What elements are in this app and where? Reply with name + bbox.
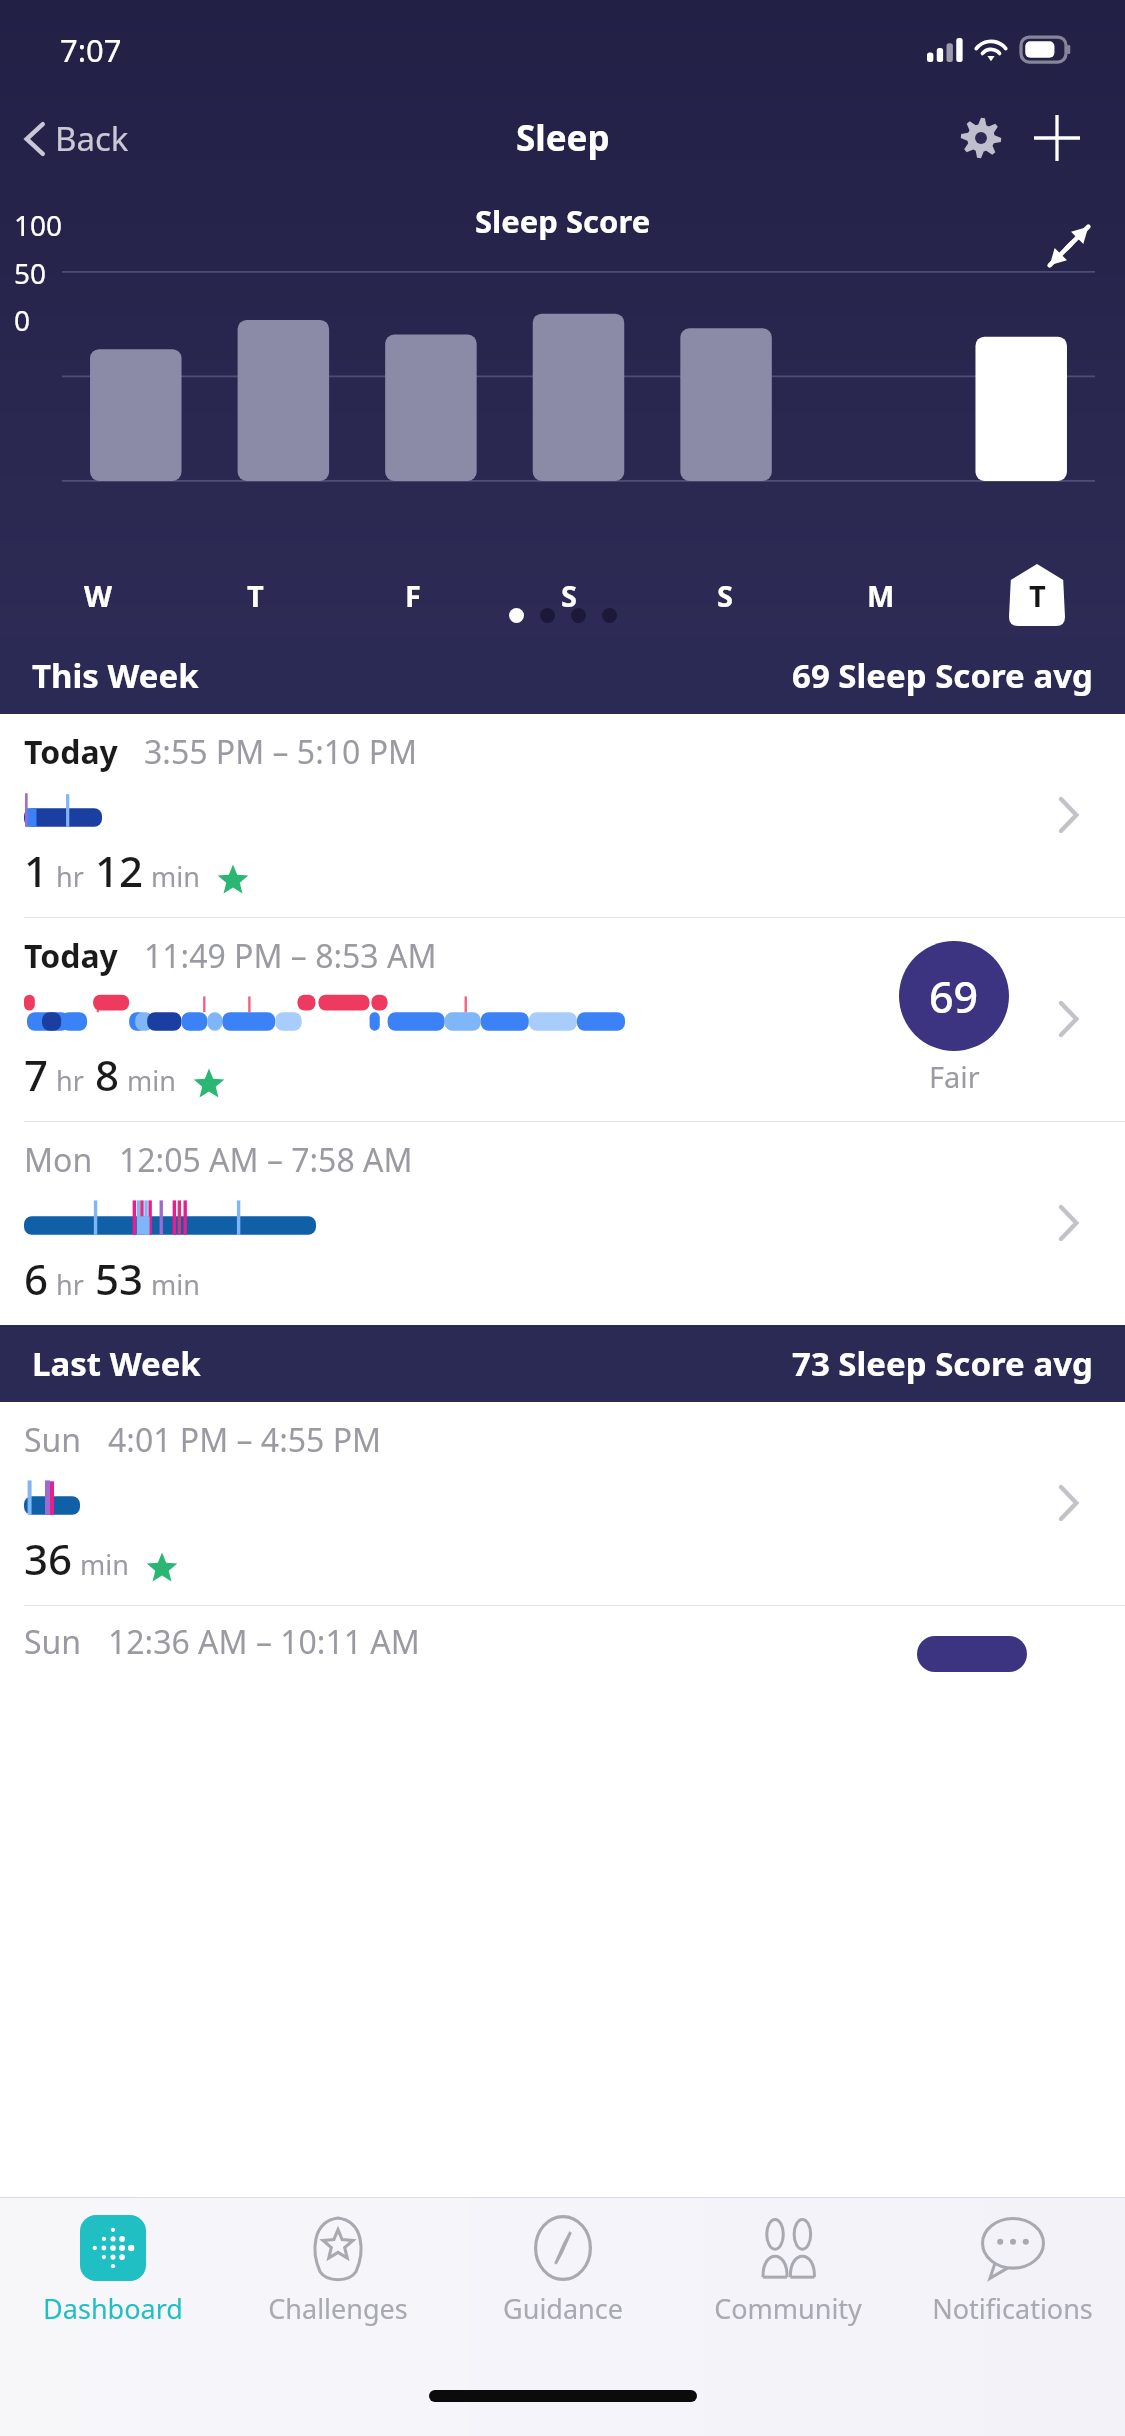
staticText: hr <box>56 1266 84 1303</box>
staticText: min <box>151 858 200 895</box>
staticText: 12:05 AM – 7:58 AM <box>119 1138 413 1182</box>
staticText: Mon <box>24 1138 93 1182</box>
staticText: 7 <box>24 1046 49 1103</box>
button[interactable]: Expand chart <box>1033 210 1105 282</box>
staticText: 50 <box>14 254 47 292</box>
staticText: T <box>247 576 264 615</box>
staticText: 36 <box>24 1530 73 1587</box>
staticText: 69 Sleep Score avg <box>792 653 1093 698</box>
staticText: This Week <box>32 653 199 698</box>
staticText: M <box>867 576 895 615</box>
button[interactable]: Sun <box>0 1402 1125 1605</box>
staticText: Notifications <box>932 2290 1093 2327</box>
button[interactable]: Dashboard <box>0 2212 225 2370</box>
staticText: Community <box>714 2290 862 2327</box>
staticText: min <box>151 1266 200 1303</box>
staticText: 6 <box>24 1250 49 1307</box>
staticText: W <box>84 576 113 615</box>
staticText: Sleep <box>516 114 610 162</box>
button[interactable]: Today <box>0 714 1125 917</box>
staticText: Dashboard <box>43 2290 183 2327</box>
staticText: hr <box>56 1062 84 1099</box>
staticText: Last Week <box>32 1341 201 1386</box>
staticText: min <box>80 1546 129 1583</box>
button[interactable]: Challenges <box>225 2212 450 2370</box>
button[interactable]: Mon <box>0 1122 1125 1325</box>
staticText: 11:49 PM – 8:53 AM <box>144 934 437 978</box>
staticText: S <box>717 576 733 615</box>
staticText: Today <box>24 934 118 978</box>
button[interactable]: Add sleep log <box>1025 106 1089 170</box>
staticText: 1 <box>24 842 49 899</box>
staticText: 4:01 PM – 4:55 PM <box>108 1418 382 1462</box>
staticText: 12 <box>95 842 144 899</box>
staticText: 69 <box>929 967 979 1026</box>
staticText: Sun <box>24 1418 82 1462</box>
button[interactable]: Today <box>0 918 1125 1121</box>
button[interactable]: Notifications <box>900 2212 1125 2370</box>
button[interactable]: Community <box>675 2212 900 2370</box>
staticText: 53 <box>95 1250 144 1307</box>
staticText: 12:36 AM – 10:11 AM <box>108 1620 420 1664</box>
staticText: F <box>405 576 421 615</box>
button[interactable]: Sun <box>0 1606 1125 1672</box>
staticText: Fair <box>929 1057 980 1096</box>
staticText: 100 <box>14 206 63 244</box>
staticText: 3:55 PM – 5:10 PM <box>144 730 418 774</box>
staticText: Back <box>55 116 129 161</box>
button[interactable]: Settings <box>949 106 1013 170</box>
staticText: T <box>1029 576 1046 615</box>
staticText: hr <box>56 858 84 895</box>
staticText: 8 <box>95 1046 120 1103</box>
button[interactable]: Guidance <box>450 2212 675 2370</box>
staticText: Today <box>24 730 118 774</box>
staticText: 0 <box>14 301 31 339</box>
staticText: Sun <box>24 1620 82 1664</box>
button[interactable]: Back <box>14 108 137 169</box>
staticText: S <box>561 576 577 615</box>
staticText: 7:07 <box>60 29 122 71</box>
staticText: Guidance <box>503 2290 623 2327</box>
staticText: 73 Sleep Score avg <box>792 1341 1093 1386</box>
staticText: Challenges <box>268 2290 408 2327</box>
staticText: Sleep Score <box>475 200 651 242</box>
staticText: min <box>127 1062 176 1099</box>
